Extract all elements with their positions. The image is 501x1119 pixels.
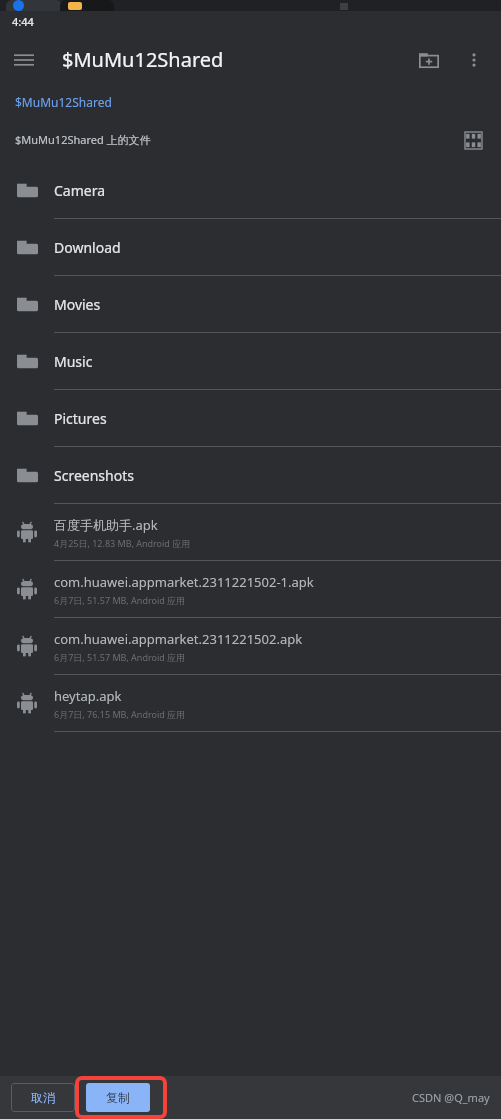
button[interactable]: Music [0,333,501,390]
button[interactable]: Download [0,219,501,276]
button[interactable]: Open navigation drawer [0,36,48,84]
staticText: 6月7日, 51.57 MB, Android 应用 [54,594,186,606]
staticText: 4月25日, 12.83 MB, Android 应用 [54,537,191,549]
staticText: Camera [54,181,106,200]
button[interactable]: Pictures [0,390,501,447]
staticText: Music [54,352,93,371]
staticText: CSDN @Q_may [412,1090,490,1105]
button[interactable]: New folder [405,36,453,84]
button[interactable]: 取消 [11,1083,75,1112]
button[interactable]: com.huawei.appmarket.2311221502-1.apk [0,561,501,618]
staticText: Download [54,238,121,257]
staticText: $MuMu12Shared [15,94,112,110]
staticText: 复制 [106,1090,130,1105]
button[interactable]: com.huawei.appmarket.2311221502.apk [0,618,501,675]
staticText: 6月7日, 76.15 MB, Android 应用 [54,708,186,720]
staticText: 取消 [31,1090,55,1105]
staticText: Screenshots [54,466,134,485]
button[interactable]: Switch to grid view [451,118,495,162]
staticText: Pictures [54,409,107,428]
staticText: $MuMu12Shared 上的文件 [15,132,151,147]
staticText: 百度手机助手.apk [54,516,158,534]
staticText: heytap.apk [54,687,122,705]
button[interactable]: More options [453,39,495,81]
button[interactable]: heytap.apk [0,675,501,732]
staticText: com.huawei.appmarket.2311221502-1.apk [54,573,314,591]
button[interactable]: Screenshots [0,447,501,504]
button[interactable]: 百度手机助手.apk [0,504,501,561]
button[interactable]: Camera [0,162,501,219]
staticText: com.huawei.appmarket.2311221502.apk [54,630,303,648]
staticText: 4:44 [12,14,34,29]
staticText: Movies [54,295,101,314]
button[interactable]: Movies [0,276,501,333]
staticText: 6月7日, 51.57 MB, Android 应用 [54,651,186,663]
button[interactable]: $MuMu12Shared [0,87,501,117]
button[interactable]: 复制 [86,1083,150,1112]
staticText: $MuMu12Shared [62,46,224,73]
